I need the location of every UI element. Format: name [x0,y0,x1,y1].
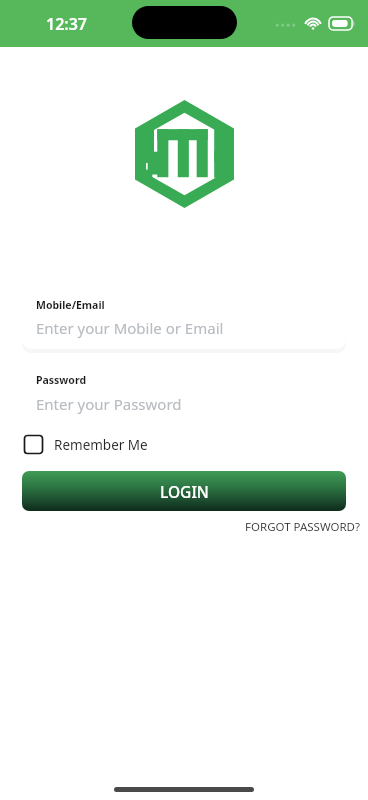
button[interactable]: FORGOT PASSWORD? [245,517,368,537]
staticText: Password [36,373,87,387]
button[interactable]: Password [0,373,368,414]
button[interactable]: LOGIN [22,471,346,511]
button[interactable]: Remember Me [22,431,150,458]
staticText: 12:37 [46,13,88,35]
staticText: Remember Me [54,436,148,454]
staticText: Enter your Password [36,394,182,414]
staticText: Enter your Mobile or Email [36,318,224,338]
staticText: LOGIN [160,481,209,502]
staticText: Mobile/Email [36,298,105,312]
button[interactable]: Mobile/Email [22,289,346,349]
